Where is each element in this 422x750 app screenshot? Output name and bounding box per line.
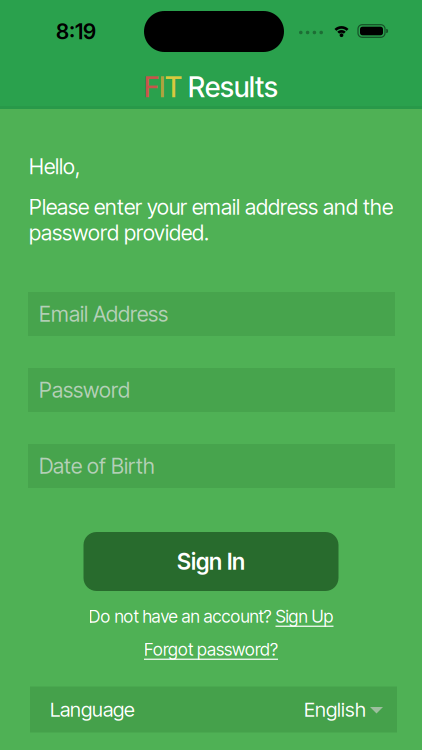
button[interactable]: Password (28, 368, 395, 412)
staticText: Email Address (39, 301, 168, 327)
staticText: I (159, 70, 165, 104)
staticText: Do not have an account? (88, 606, 275, 627)
button[interactable]: Sign Up (275, 606, 333, 627)
staticText: Forgot password? (144, 639, 278, 660)
button[interactable]: Sign In (83, 532, 338, 591)
staticText: Password (39, 377, 130, 403)
staticText: Hello, (29, 153, 80, 179)
staticText: Please enter your email address and the … (29, 194, 393, 246)
button[interactable]: Forgot password? (144, 639, 278, 660)
button[interactable]: Date of Birth (28, 444, 395, 488)
staticText: 8:19 (56, 19, 96, 44)
staticText: English (304, 697, 366, 722)
button[interactable]: Language (30, 686, 397, 732)
staticText: Results (182, 70, 278, 104)
staticText: Sign Up (275, 606, 333, 627)
button[interactable]: Email Address (28, 292, 395, 336)
staticText: T (165, 70, 182, 104)
staticText: Sign In (177, 548, 245, 575)
staticText: F (144, 70, 159, 104)
staticText: Language (50, 697, 135, 722)
staticText: Date of Birth (39, 453, 155, 479)
